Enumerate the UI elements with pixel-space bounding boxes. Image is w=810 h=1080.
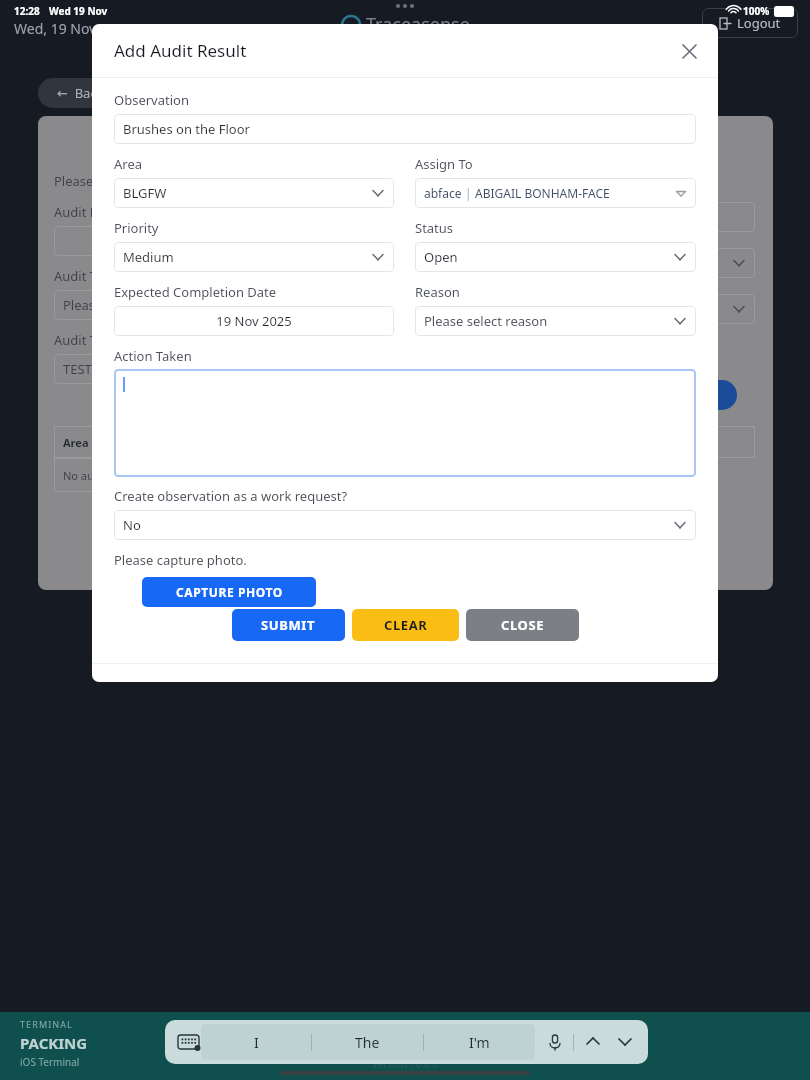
staticText: Wed, 19 Nov 2025 12:28	[14, 19, 172, 38]
staticText: No aud	[63, 468, 101, 483]
staticText: CAPTURE PHOTO	[176, 584, 283, 600]
staticText: CLOSE	[501, 616, 545, 634]
button[interactable]	[114, 369, 696, 477]
staticText: Assign To	[415, 155, 473, 173]
staticText: 12:28	[14, 4, 40, 18]
button[interactable]: Previous field	[580, 1029, 606, 1055]
staticText: I'm	[469, 1033, 490, 1052]
staticText: The	[355, 1033, 380, 1052]
button[interactable]: Brushes on the Floor	[114, 114, 696, 144]
button[interactable]: BLGFW	[114, 178, 394, 208]
button[interactable]: Next field	[612, 1029, 638, 1055]
button[interactable]: Keyboard settings	[175, 1029, 201, 1055]
staticText: I	[254, 1033, 259, 1052]
staticText: Version 10.0.0	[372, 1057, 439, 1071]
staticText: iOS Terminal	[20, 1055, 80, 1069]
staticText: ← Back	[57, 84, 104, 102]
button[interactable]: CLEAR	[352, 609, 459, 641]
staticText: Pleas	[63, 296, 96, 314]
staticText: 100%	[743, 4, 770, 18]
staticText: Expected Completion Date	[114, 283, 277, 301]
button[interactable]: I	[201, 1024, 311, 1060]
staticText: Please	[54, 172, 94, 190]
staticText: BLGFW	[123, 184, 371, 202]
staticText: Area	[63, 435, 89, 450]
button[interactable]: I'm	[424, 1024, 535, 1060]
button[interactable]: Please select reason	[415, 306, 696, 336]
staticText: PACKING	[20, 1033, 88, 1053]
staticText: |	[462, 185, 475, 201]
staticText: Audit T	[54, 331, 97, 349]
button[interactable]: The	[312, 1024, 423, 1060]
staticText: Logout	[737, 14, 781, 32]
staticText: Observation	[114, 91, 189, 109]
staticText: abface	[424, 185, 462, 201]
staticText: TEST	[63, 360, 92, 378]
button[interactable]: SUBMIT	[232, 609, 345, 641]
staticText: Create observation as a work request?	[114, 487, 348, 505]
staticText: ABIGAIL BONHAM-FACE	[475, 185, 610, 201]
staticText: Action Taken	[114, 347, 192, 365]
staticText: Wed 19 Nov	[49, 4, 108, 18]
button[interactable]: Open	[415, 242, 696, 272]
button[interactable]: ← Back	[38, 78, 122, 108]
staticText: Please capture photo.	[114, 551, 247, 569]
staticText: Medium	[123, 248, 371, 266]
staticText: 19 Nov 2025	[123, 312, 385, 330]
staticText: TERMINAL	[20, 1018, 73, 1030]
staticText: No	[123, 516, 673, 534]
button[interactable]: 19 Nov 2025	[114, 306, 394, 336]
button[interactable]: Logout	[702, 8, 798, 38]
staticText: Area	[114, 155, 143, 173]
staticText: Audit D	[54, 203, 100, 221]
staticText: Brushes on the Floor	[123, 120, 687, 138]
button[interactable]: CLOSE	[466, 609, 579, 641]
button[interactable]: abface	[415, 178, 696, 208]
staticText: Status	[415, 219, 454, 237]
button[interactable]: Close dialog	[674, 36, 704, 66]
button[interactable]: Voice input	[543, 1030, 567, 1054]
staticText: Open	[424, 248, 673, 266]
staticText: Reason	[415, 283, 460, 301]
staticText: Please select reason	[424, 312, 673, 330]
staticText: CLEAR	[384, 616, 428, 634]
staticText: Add Audit Result	[114, 39, 247, 62]
button[interactable]: CAPTURE PHOTO	[142, 577, 316, 607]
button[interactable]: Medium	[114, 242, 394, 272]
button[interactable]: Add	[681, 380, 737, 410]
staticText: Audit T	[54, 267, 97, 285]
staticText: SUBMIT	[261, 616, 316, 634]
staticText: Priority	[114, 219, 159, 237]
staticText: Traceasense	[366, 12, 470, 37]
button[interactable]: No	[114, 510, 696, 540]
